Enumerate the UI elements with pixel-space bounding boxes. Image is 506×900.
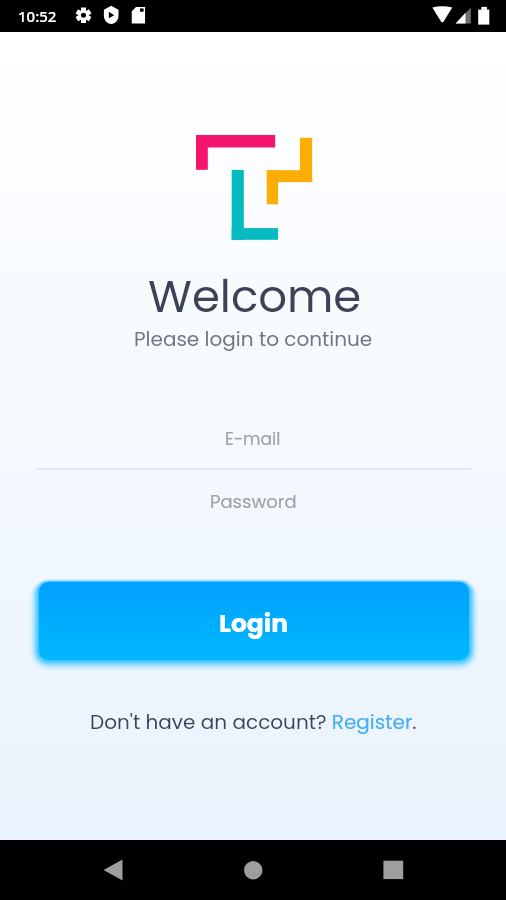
button[interactable]: Login <box>39 582 469 660</box>
staticText: Password <box>210 489 297 514</box>
button[interactable]: E-mail <box>0 417 506 461</box>
button[interactable]: Back <box>82 840 144 900</box>
button[interactable]: Recents <box>362 840 424 900</box>
staticText: Login <box>219 606 289 641</box>
staticText: E-mail <box>225 427 281 451</box>
staticText: 10:52 <box>18 6 57 26</box>
button[interactable]: Home <box>222 840 284 900</box>
button[interactable]: Don't have an account? Register. <box>90 708 417 736</box>
staticText: Please login to continue <box>134 325 373 353</box>
button[interactable]: Password <box>0 479 506 523</box>
staticText: Welcome <box>148 265 362 328</box>
